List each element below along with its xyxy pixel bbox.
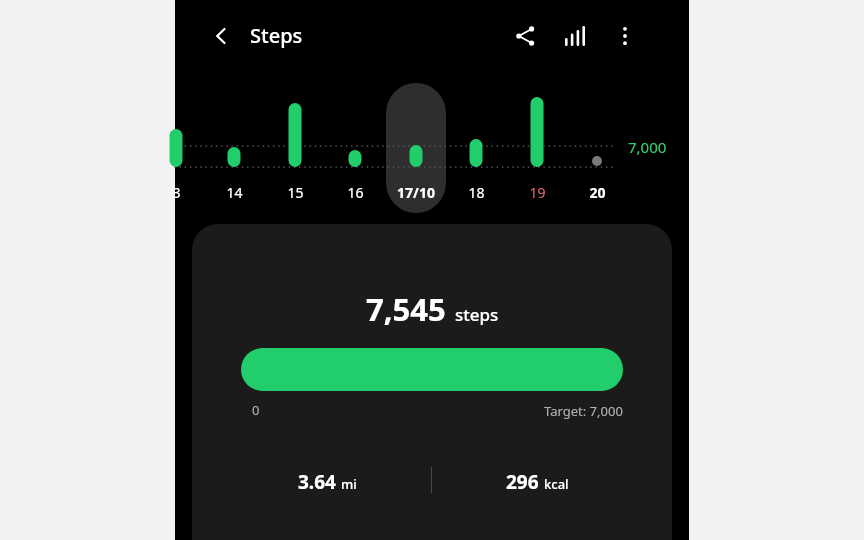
staticText: 3 xyxy=(172,183,181,202)
button[interactable]: 14 xyxy=(204,182,264,202)
staticText: steps xyxy=(455,303,499,326)
staticText: 7,545 xyxy=(366,288,446,330)
button[interactable]: Back xyxy=(201,16,241,56)
button[interactable]: 18 xyxy=(446,182,506,202)
button[interactable]: 17/10 xyxy=(386,182,446,202)
button[interactable]: 16 xyxy=(325,182,385,202)
button[interactable]: 20 xyxy=(567,182,627,202)
staticText: 19 xyxy=(529,183,546,202)
staticText: 3.64 xyxy=(298,469,336,495)
staticText: 296 xyxy=(506,469,539,495)
button[interactable]: Chart xyxy=(555,16,595,56)
button[interactable]: Share xyxy=(505,16,545,56)
button[interactable]: 3 xyxy=(146,182,206,202)
staticText: 0 xyxy=(252,401,260,419)
button[interactable]: 15 xyxy=(265,182,325,202)
staticText: mi xyxy=(341,475,357,493)
button[interactable]: 19 xyxy=(507,182,567,202)
button[interactable]: Selected day 17/10 xyxy=(386,83,446,213)
staticText: 20 xyxy=(589,183,606,202)
staticText: 14 xyxy=(226,183,243,202)
staticText: 18 xyxy=(468,183,485,202)
staticText: 7,000 xyxy=(628,137,667,157)
staticText: Steps xyxy=(250,22,303,49)
staticText: 17/10 xyxy=(397,183,435,202)
button[interactable]: More options xyxy=(605,16,645,56)
button[interactable]: 7,545 xyxy=(192,224,672,540)
staticText: 15 xyxy=(287,183,304,202)
staticText: 16 xyxy=(347,183,364,202)
staticText: kcal xyxy=(544,475,569,493)
staticText: Target: 7,000 xyxy=(544,402,623,420)
